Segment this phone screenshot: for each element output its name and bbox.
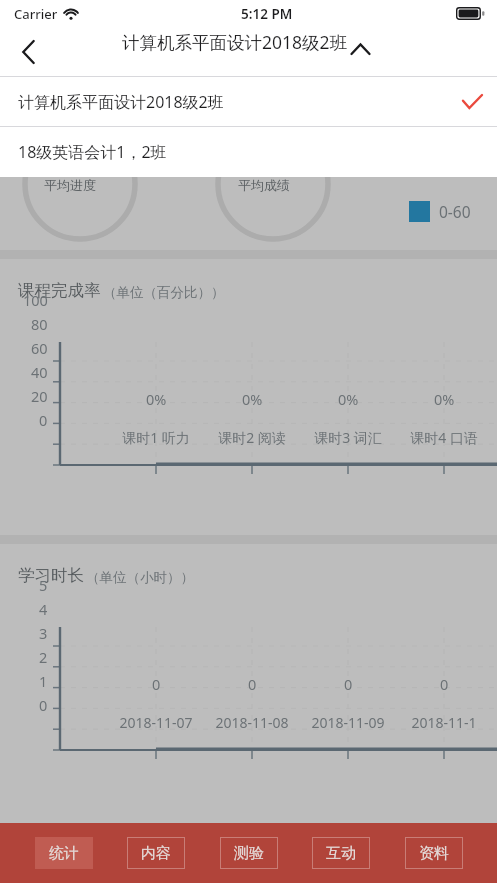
staticText: 课时1 听力 <box>122 428 190 447</box>
staticText: 80 <box>31 314 48 334</box>
staticText: 互动 <box>326 844 356 863</box>
staticText: 2018-11-09 <box>311 713 385 732</box>
staticText: 2018-11-1 <box>411 713 477 732</box>
staticText: 0% <box>242 389 263 409</box>
staticText: 0% <box>338 389 359 409</box>
staticText: 0 <box>440 674 449 694</box>
button[interactable]: Back <box>4 28 52 76</box>
button[interactable]: 内容 <box>127 837 185 869</box>
staticText: Carrier <box>14 5 58 23</box>
button[interactable]: 资料 <box>405 837 463 869</box>
staticText: 0% <box>434 389 455 409</box>
button[interactable]: 互动 <box>312 837 370 869</box>
button[interactable]: 计算机系平面设计2018级2班 <box>0 77 497 126</box>
staticText: 学习时长 <box>18 565 84 586</box>
staticText: 0 <box>39 695 48 715</box>
staticText: 0% <box>146 389 167 409</box>
staticText: 5 <box>39 575 48 595</box>
staticText: 测验 <box>234 844 264 863</box>
staticText: 1 <box>39 671 48 691</box>
staticText: 计算机系平面设计2018级2班 <box>18 91 224 113</box>
staticText: 4 <box>39 599 48 619</box>
staticText: 平均成绩 <box>238 177 290 193</box>
staticText: 5:12 PM <box>241 5 293 23</box>
staticText: 课时4 口语 <box>410 428 478 447</box>
button[interactable]: 统计 <box>35 837 93 869</box>
staticText: 60 <box>31 338 48 358</box>
staticText: 20 <box>31 386 48 406</box>
button[interactable]: 计算机系平面设计2018级2班 <box>122 30 384 59</box>
staticText: 平均进度 <box>44 177 96 193</box>
staticText: 2018-11-08 <box>215 713 289 732</box>
other: Collapse class list <box>350 39 370 59</box>
staticText: 计算机系平面设计2018级2班 <box>122 30 350 54</box>
staticText: 课程完成率 <box>18 280 101 301</box>
staticText: （单位（百分比）） <box>103 284 225 301</box>
staticText: 课时2 阅读 <box>218 428 286 447</box>
staticText: 0 <box>152 674 161 694</box>
staticText: 2 <box>39 647 48 667</box>
staticText: 课时3 词汇 <box>314 428 382 447</box>
staticText: 0 <box>39 410 48 430</box>
staticText: 内容 <box>141 844 171 863</box>
staticText: （单位（小时）） <box>86 569 194 586</box>
staticText: 100 <box>23 290 48 310</box>
staticText: 0 <box>344 674 353 694</box>
staticText: 40 <box>31 362 48 382</box>
staticText: 0 <box>248 674 257 694</box>
staticText: 统计 <box>49 844 79 863</box>
staticText: 18级英语会计1，2班 <box>18 141 167 163</box>
staticText: 2018-11-07 <box>119 713 193 732</box>
staticText: 3 <box>39 623 48 643</box>
staticText: 资料 <box>419 844 449 863</box>
button[interactable]: 测验 <box>220 837 278 869</box>
button[interactable]: 18级英语会计1，2班 <box>0 127 497 177</box>
staticText: 0-60 <box>439 201 471 222</box>
